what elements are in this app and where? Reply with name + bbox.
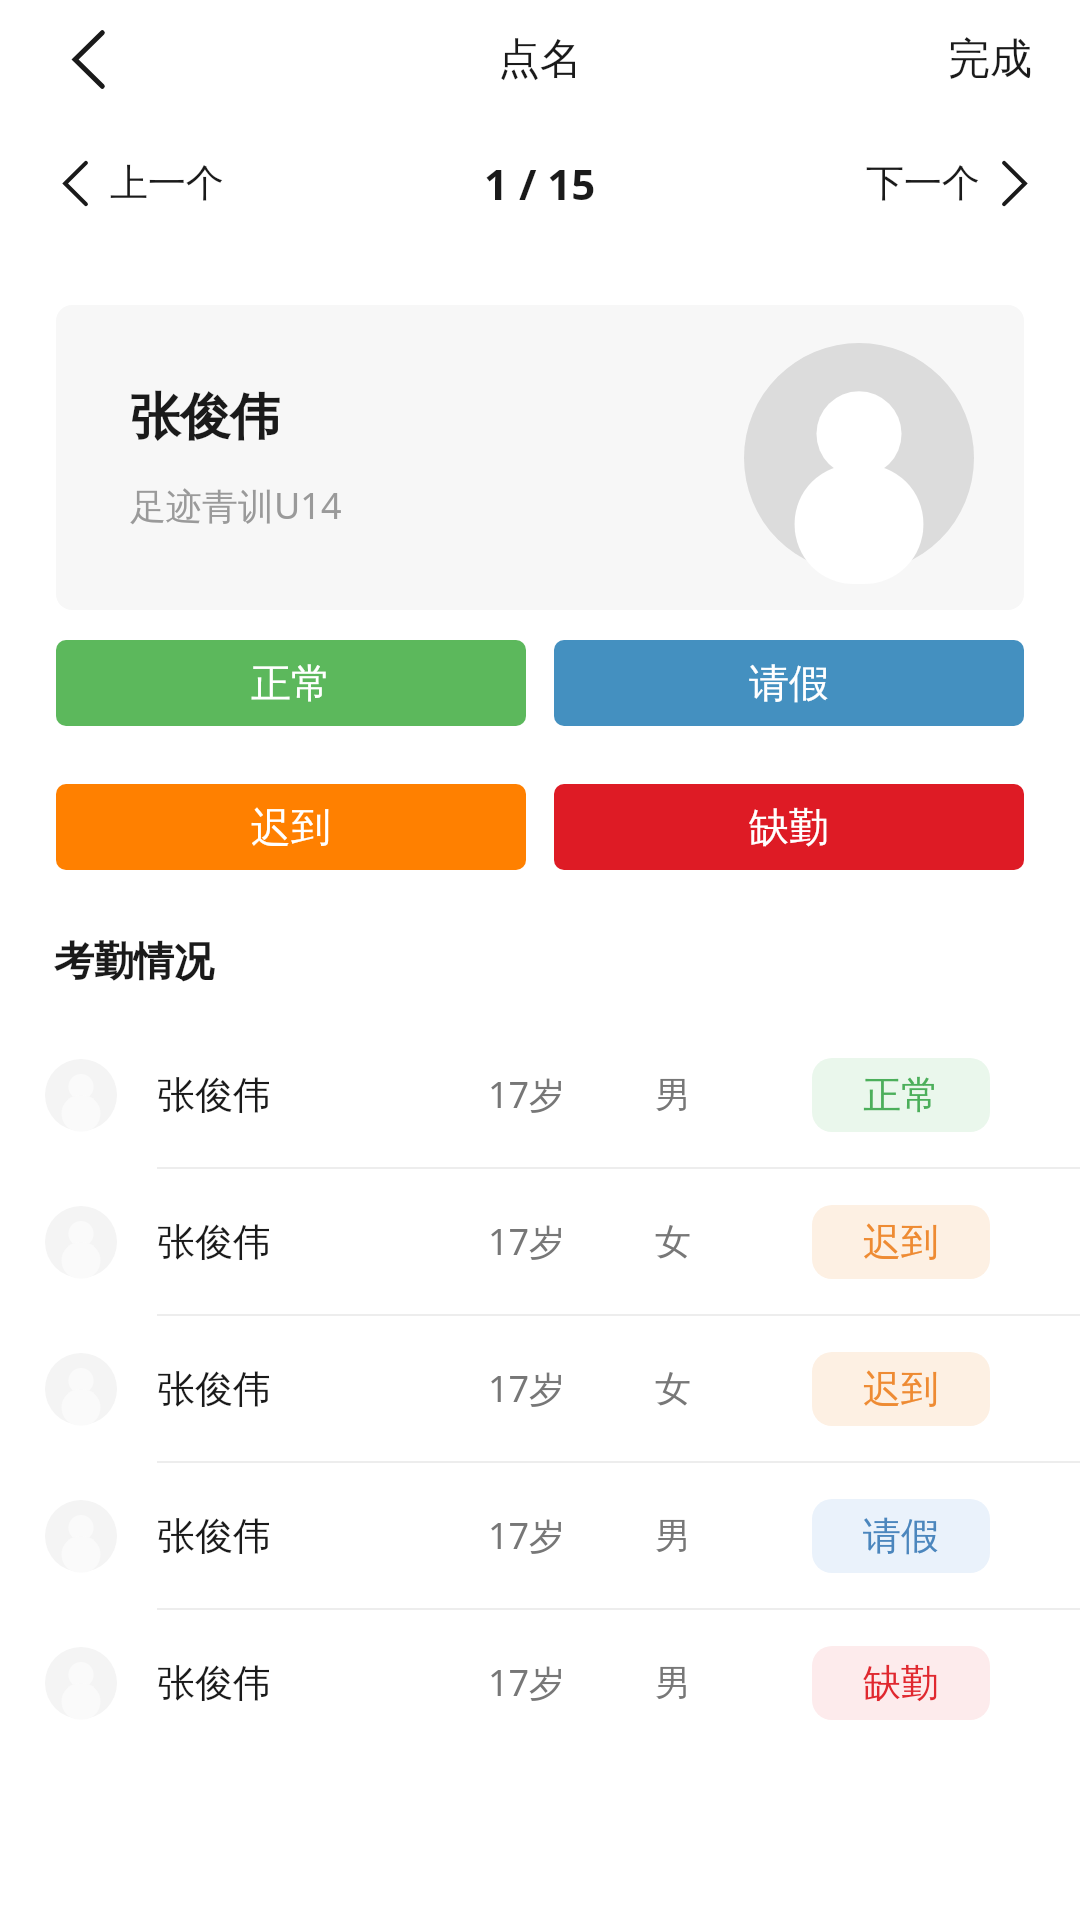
button[interactable]: 张俊伟: [0, 1169, 1080, 1314]
staticText: 迟到: [251, 802, 331, 852]
staticText: 17岁: [488, 1511, 566, 1560]
button[interactable]: 缺勤: [554, 784, 1024, 870]
button[interactable]: 张俊伟: [0, 1316, 1080, 1461]
staticText: 迟到: [863, 1365, 939, 1413]
staticText: 男: [655, 1660, 691, 1705]
button[interactable]: 请假: [554, 640, 1024, 726]
staticText: 17岁: [488, 1364, 566, 1413]
staticText: 男: [655, 1072, 691, 1117]
staticText: 17岁: [488, 1217, 566, 1266]
staticText: 迟到: [863, 1218, 939, 1266]
staticText: 17岁: [488, 1658, 566, 1707]
staticText: 1 / 15: [484, 155, 596, 212]
staticText: 点名: [498, 33, 582, 86]
button[interactable]: 迟到: [56, 784, 526, 870]
staticText: 张俊伟: [157, 1218, 271, 1266]
button[interactable]: 张俊伟: [0, 1463, 1080, 1608]
staticText: 正常: [863, 1071, 939, 1119]
staticText: 正常: [251, 658, 331, 708]
staticText: 17岁: [488, 1070, 566, 1119]
staticText: 男: [655, 1513, 691, 1558]
button[interactable]: 下一个: [852, 143, 1042, 223]
staticText: 缺勤: [863, 1659, 939, 1707]
staticText: 缺勤: [749, 802, 829, 852]
button[interactable]: 上一个: [48, 143, 238, 223]
staticText: 足迹青训U14: [130, 481, 342, 530]
staticText: 上一个: [110, 159, 224, 207]
button[interactable]: 张俊伟: [0, 1022, 1080, 1167]
button[interactable]: 张俊伟: [56, 305, 1024, 610]
staticText: 下一个: [866, 159, 980, 207]
button[interactable]: 张俊伟: [0, 1610, 1080, 1755]
button[interactable]: 正常: [56, 640, 526, 726]
staticText: 张俊伟: [157, 1071, 271, 1119]
staticText: 女: [655, 1219, 691, 1264]
staticText: 女: [655, 1366, 691, 1411]
staticText: 请假: [749, 658, 829, 708]
button[interactable]: Back: [52, 23, 124, 95]
staticText: 张俊伟: [157, 1659, 271, 1707]
staticText: 张俊伟: [157, 1512, 271, 1560]
button[interactable]: 完成: [930, 19, 1050, 100]
staticText: 考勤情况: [54, 936, 214, 986]
staticText: 张俊伟: [157, 1365, 271, 1413]
staticText: 完成: [948, 33, 1032, 86]
staticText: 请假: [863, 1512, 939, 1560]
staticText: 张俊伟: [130, 386, 280, 449]
